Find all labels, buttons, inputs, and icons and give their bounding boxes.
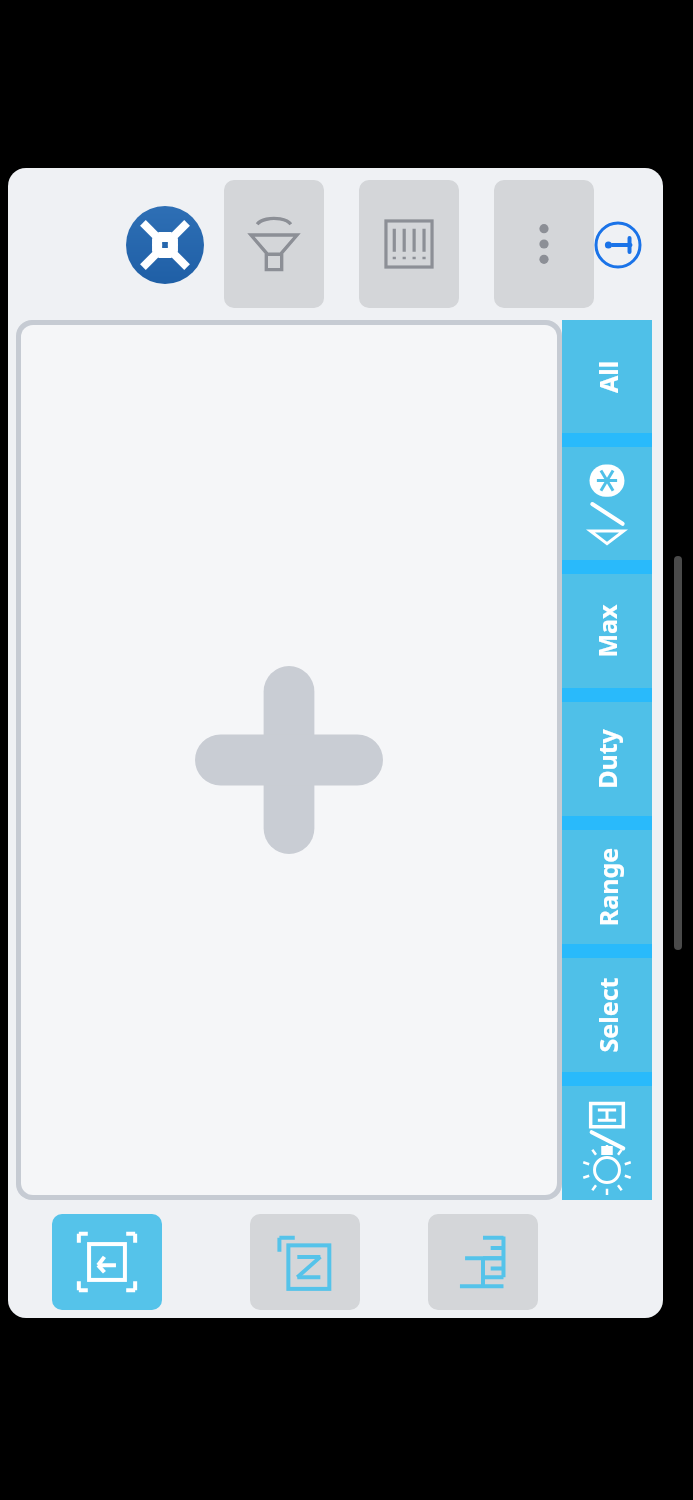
staticText: Max bbox=[590, 604, 624, 658]
button[interactable] bbox=[562, 1086, 652, 1200]
staticText: Range bbox=[590, 847, 624, 926]
button[interactable]: Max bbox=[562, 574, 652, 688]
button[interactable]: Crop area bbox=[52, 1214, 162, 1310]
button[interactable]: Ruler bbox=[428, 1214, 538, 1310]
button[interactable]: Range bbox=[562, 830, 652, 944]
staticText: All bbox=[590, 360, 624, 393]
staticText: Select bbox=[590, 977, 624, 1052]
button[interactable]: All bbox=[562, 320, 652, 433]
button[interactable]: Select bbox=[562, 958, 652, 1072]
button[interactable] bbox=[562, 447, 652, 560]
button[interactable]: Layers bbox=[250, 1214, 360, 1310]
button[interactable]: Scale bars bbox=[359, 180, 459, 308]
button[interactable] bbox=[21, 325, 557, 1195]
button[interactable]: Light cone bbox=[224, 180, 324, 308]
staticText: Duty bbox=[590, 729, 624, 789]
button[interactable]: Duty bbox=[562, 702, 652, 816]
button[interactable]: Fit to screen bbox=[126, 206, 204, 284]
button[interactable]: More options bbox=[494, 180, 594, 308]
button[interactable]: Measure bbox=[594, 221, 642, 269]
